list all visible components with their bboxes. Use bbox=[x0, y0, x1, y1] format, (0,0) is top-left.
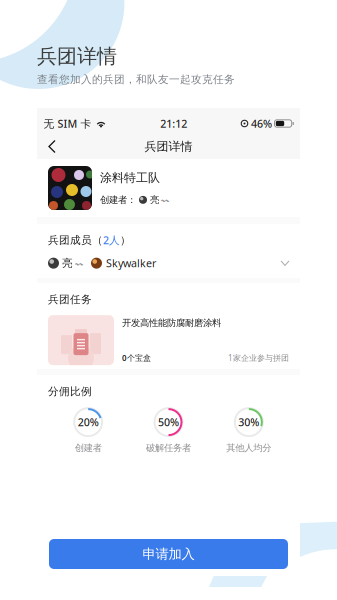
staticText: 21:12 bbox=[160, 116, 187, 131]
staticText: 破解任务者 bbox=[146, 442, 191, 454]
staticText: 涂料特工队 bbox=[100, 170, 160, 185]
button[interactable]: 申请加入 bbox=[49, 539, 288, 569]
staticText: 查看您加入的兵团，和队友一起攻克任务 bbox=[37, 73, 235, 86]
staticText: 0个宝盒 bbox=[122, 352, 151, 363]
staticText: 开发高性能防腐耐磨涂料 bbox=[122, 317, 221, 329]
staticText: 1家企业参与拼团 bbox=[228, 352, 289, 363]
staticText: 无 SIM 卡 bbox=[43, 116, 91, 131]
staticText: 亮 bbox=[150, 194, 159, 206]
staticText: 兵团任务 bbox=[48, 293, 92, 306]
staticText: 50% bbox=[158, 415, 179, 429]
staticText: 20% bbox=[78, 415, 99, 429]
button[interactable]: 涂料特工队 bbox=[37, 159, 300, 217]
staticText: 46% bbox=[251, 116, 272, 131]
staticText: 兵团详情 bbox=[144, 139, 192, 154]
staticText: 申请加入 bbox=[142, 546, 194, 562]
staticText: 创建者： bbox=[100, 194, 136, 206]
staticText: 〰 bbox=[161, 194, 169, 205]
staticText: Skywalker bbox=[106, 256, 156, 270]
staticText: 其他人均分 bbox=[226, 442, 271, 454]
staticText: 兵团详情 bbox=[37, 44, 117, 69]
staticText: 创建者 bbox=[75, 442, 102, 454]
staticText: 〰 bbox=[75, 257, 83, 269]
button[interactable]: 开发高性能防腐耐磨涂料 bbox=[48, 315, 289, 365]
staticText: 30% bbox=[238, 415, 259, 429]
staticText: 分佣比例 bbox=[48, 385, 92, 398]
staticText: ） bbox=[120, 233, 131, 247]
staticText: 亮 bbox=[62, 257, 73, 270]
staticText: 2人 bbox=[103, 233, 120, 247]
staticText: 兵团成员（ bbox=[48, 233, 103, 247]
button[interactable]: 亮 bbox=[48, 256, 289, 270]
button[interactable]: 返回 bbox=[37, 132, 64, 160]
